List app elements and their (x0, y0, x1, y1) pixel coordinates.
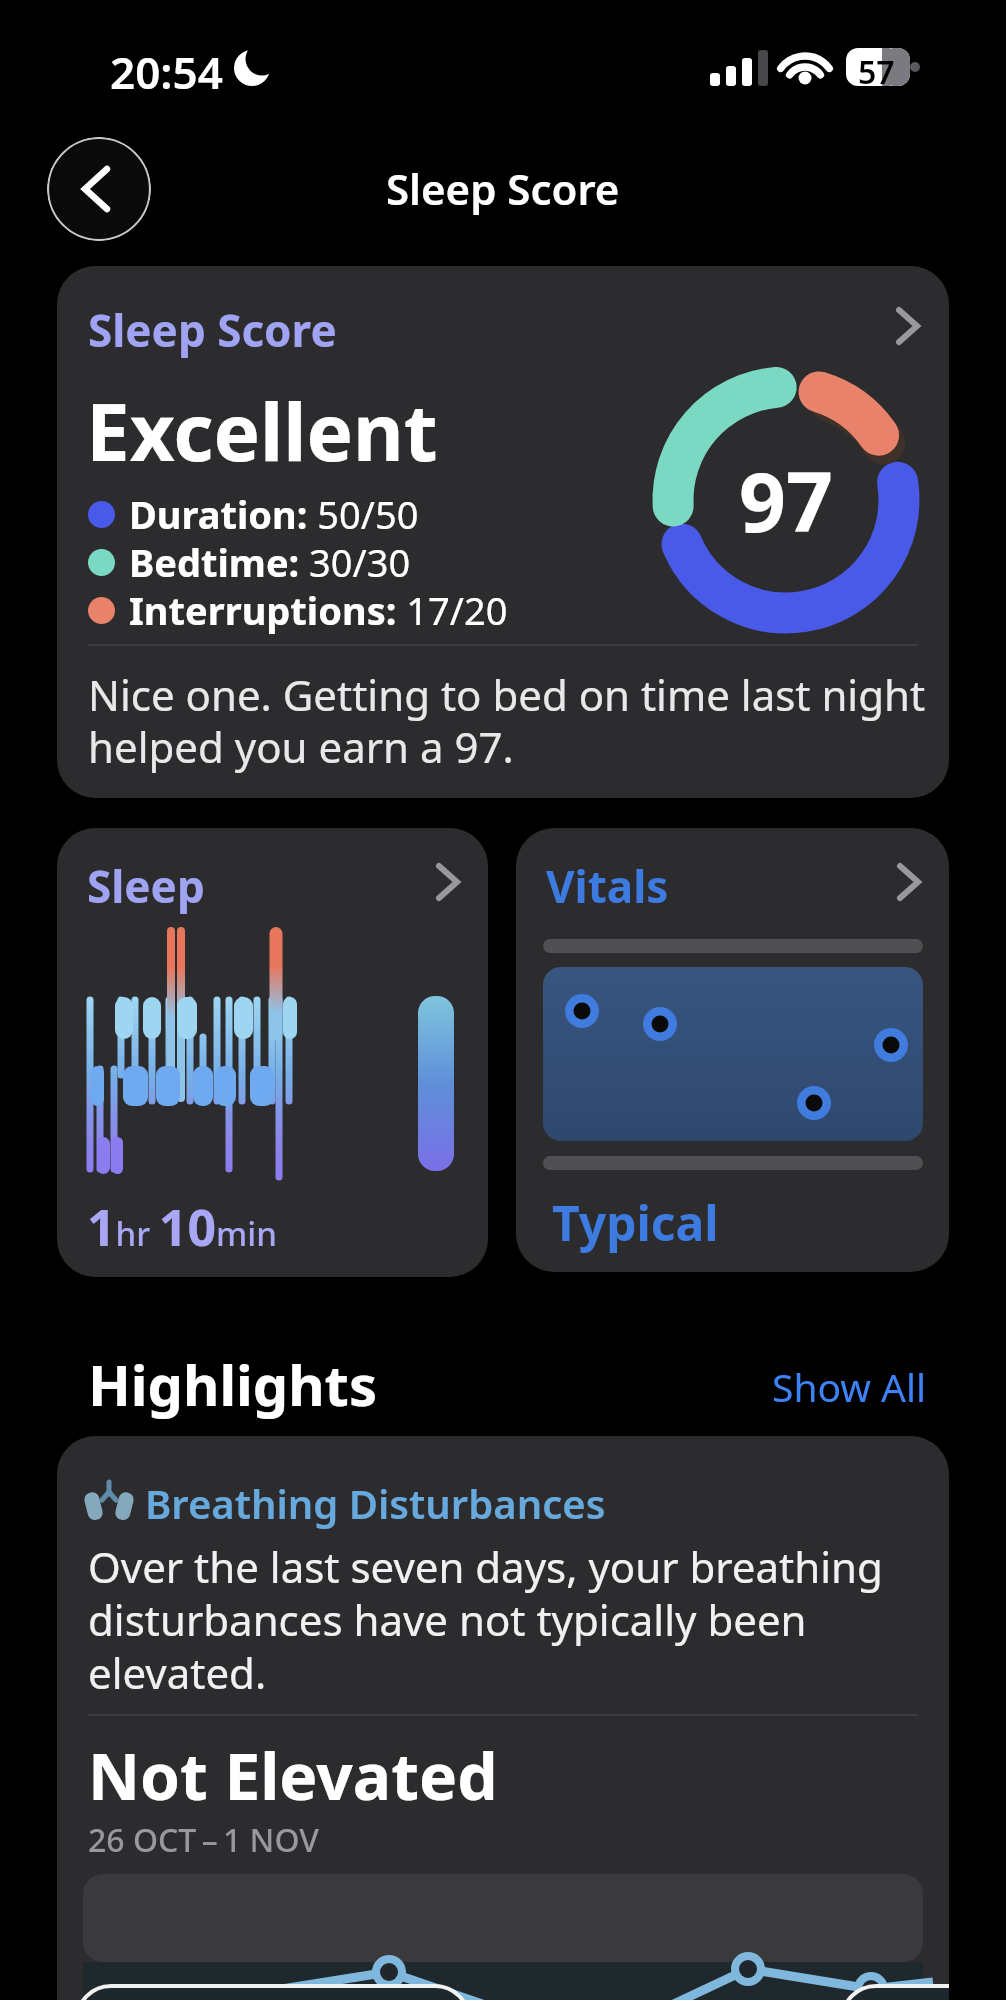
staticText: Sleep Score (386, 160, 620, 217)
staticText: Not Elevated (88, 1732, 498, 1819)
staticText: 1hr 10min (87, 1193, 277, 1261)
button[interactable]: Sleep (57, 828, 488, 1277)
button[interactable]: Breathing Disturbances (57, 1436, 949, 2000)
staticText: Over the last seven days, your breathing… (88, 1538, 883, 1701)
staticText: Sleep Score (88, 300, 337, 360)
button[interactable]: Sleep Score (57, 266, 949, 798)
staticText: 57 (858, 50, 895, 94)
staticText: Duration: 50/50 (129, 488, 419, 540)
staticText: 97 (739, 444, 833, 556)
staticText: Sleep (87, 856, 205, 916)
staticText: Nice one. Getting to bed on time last ni… (88, 666, 926, 775)
staticText: 26 OCT – 1 NOV (88, 1818, 319, 1862)
staticText: Vitals (546, 856, 669, 916)
staticText: Typical (552, 1190, 719, 1255)
staticText: 20:54 (110, 42, 223, 102)
button[interactable]: Vitals (516, 828, 949, 1272)
staticText: Bedtime: 30/30 (129, 536, 411, 588)
button[interactable] (47, 137, 151, 241)
staticText: Breathing Disturbances (145, 1476, 606, 1530)
staticText: Highlights (88, 1346, 378, 1422)
button[interactable]: Show All (772, 1360, 927, 1413)
staticText: Excellent (86, 378, 438, 484)
staticText: Show All (772, 1360, 927, 1413)
staticText: Interruptions: 17/20 (129, 584, 508, 636)
